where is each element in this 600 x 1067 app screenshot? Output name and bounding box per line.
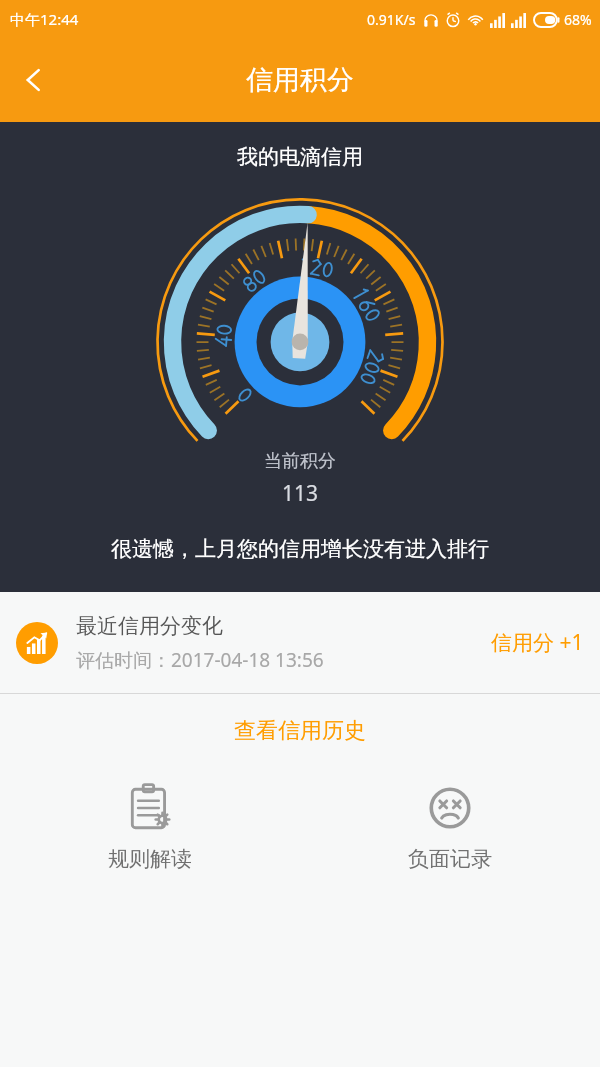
staticText: 中午12:44	[10, 9, 79, 29]
staticText: 很遗憾，上月您的信用增长没有进入排行	[111, 536, 489, 562]
button[interactable]: Back	[6, 52, 62, 108]
button[interactable]: 查看信用历史	[0, 694, 600, 768]
button[interactable]: 规则解读	[0, 768, 300, 908]
staticText: 查看信用历史	[234, 717, 366, 745]
button[interactable]: 最近信用分变化	[0, 592, 600, 693]
staticText: 68%	[564, 10, 592, 29]
staticText: 0.91K/s	[367, 10, 416, 29]
staticText: 负面记录	[408, 846, 492, 872]
button[interactable]: 负面记录	[300, 768, 600, 908]
staticText: 信用积分	[246, 63, 354, 97]
staticText: 信用分 +1	[491, 628, 584, 657]
staticText: 最近信用分变化	[76, 613, 223, 639]
staticText: 当前积分	[264, 450, 336, 473]
staticText: 规则解读	[108, 846, 192, 872]
staticText: 评估时间：2017-04-18 13:56	[76, 647, 324, 673]
staticText: 113	[282, 479, 319, 508]
staticText: 我的电滴信用	[237, 144, 363, 170]
